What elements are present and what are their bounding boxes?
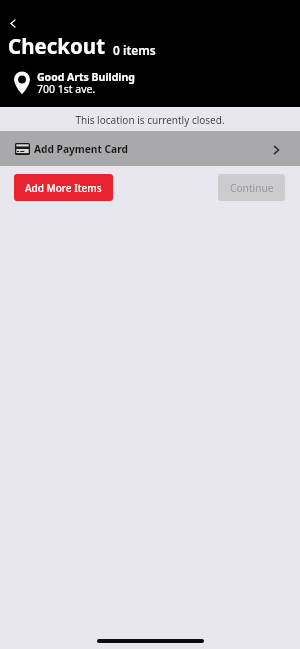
button[interactable]: Back bbox=[1, 12, 23, 34]
staticText: Continue bbox=[230, 181, 274, 195]
button[interactable]: Add More Items bbox=[14, 174, 113, 201]
staticText: 0 items bbox=[113, 42, 156, 58]
staticText: 700 1st ave. bbox=[37, 82, 96, 96]
staticText: Checkout bbox=[8, 32, 106, 60]
staticText: Add More Items bbox=[25, 181, 102, 195]
button[interactable]: Add Payment Card bbox=[0, 131, 300, 166]
button[interactable]: Continue bbox=[218, 174, 285, 201]
staticText: Add Payment Card bbox=[34, 142, 128, 156]
staticText: This location is currently closed. bbox=[0, 113, 300, 127]
staticText: Good Arts Building bbox=[37, 70, 135, 84]
